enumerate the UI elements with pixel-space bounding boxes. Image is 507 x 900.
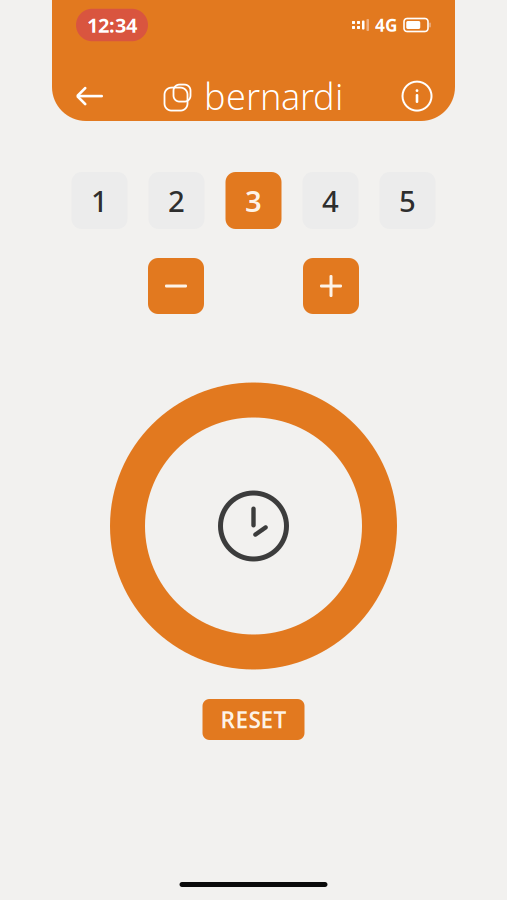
button[interactable]: 5: [379, 172, 435, 229]
button[interactable]: 4: [302, 172, 358, 229]
button[interactable]: Information: [395, 74, 439, 118]
staticText: bernardi: [204, 72, 343, 120]
staticText: 4G: [375, 13, 398, 36]
button[interactable]: Back: [68, 74, 112, 118]
staticText: 3: [245, 181, 262, 220]
staticText: 4: [322, 181, 339, 220]
button[interactable]: 3: [225, 172, 281, 229]
button[interactable]: 1: [71, 172, 127, 229]
staticText: RESET: [220, 704, 286, 734]
staticText: 12:34: [87, 12, 137, 38]
button[interactable]: Increase: [303, 258, 359, 314]
staticText: 5: [399, 181, 416, 220]
staticText: 2: [168, 181, 185, 220]
staticText: 1: [91, 181, 108, 220]
button[interactable]: RESET: [202, 699, 304, 740]
button[interactable]: 2: [148, 172, 204, 229]
button[interactable]: Decrease: [148, 258, 204, 314]
